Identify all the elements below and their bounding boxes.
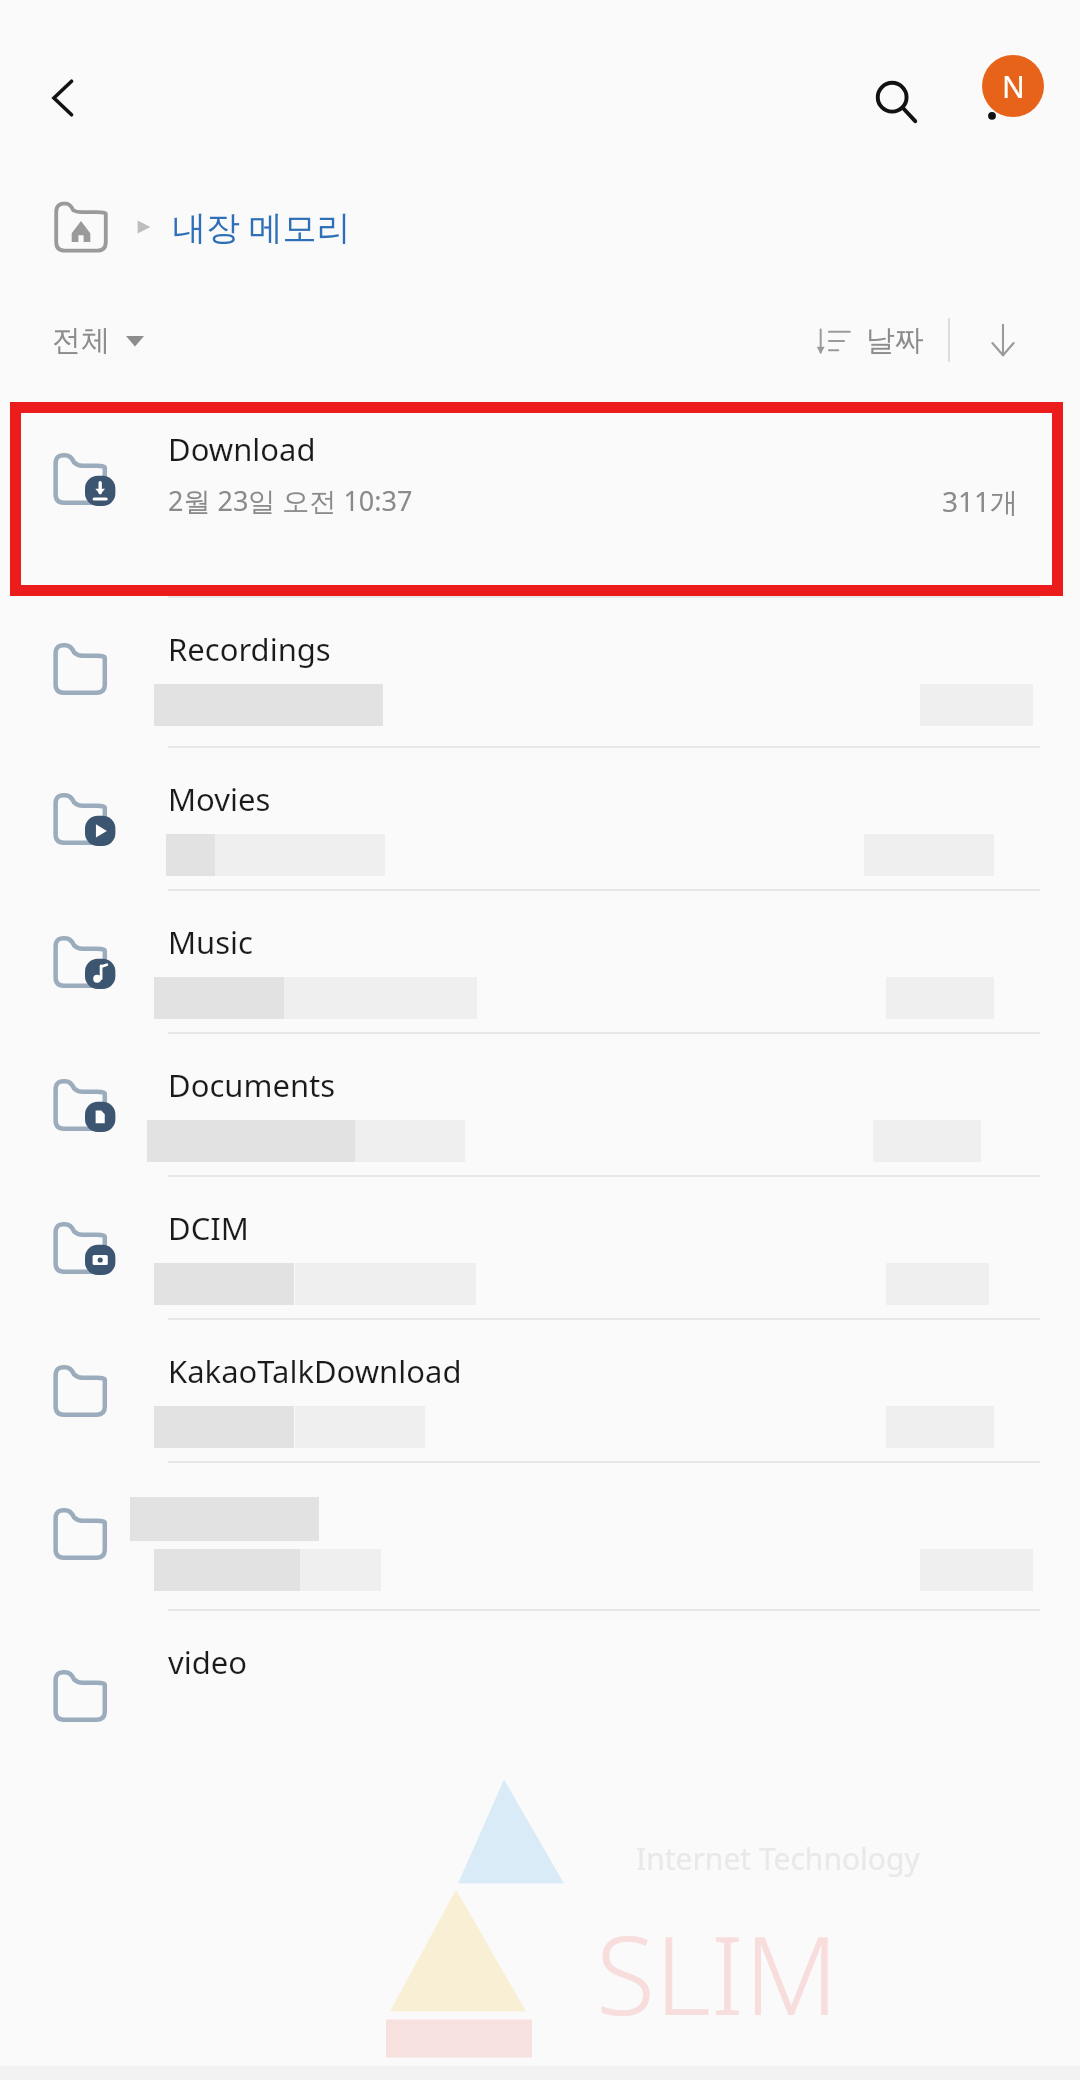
button[interactable]: 전체 xyxy=(52,322,144,359)
staticText: Download xyxy=(168,428,316,470)
button[interactable]: DCIM xyxy=(0,1177,1080,1320)
staticText: Music xyxy=(168,921,254,963)
button[interactable]: video xyxy=(0,1611,1080,1751)
button[interactable]: Download xyxy=(0,398,1080,598)
button[interactable]: More options xyxy=(952,62,1032,142)
button[interactable]: 내장 메모리 xyxy=(172,204,351,250)
staticText: N xyxy=(1002,66,1025,107)
button[interactable]: KakaoTalkDownload xyxy=(0,1320,1080,1463)
button[interactable]: 날짜 xyxy=(816,322,924,359)
staticText: KakaoTalkDownload xyxy=(168,1350,462,1392)
staticText: Movies xyxy=(168,778,271,820)
staticText: Recordings xyxy=(168,628,331,670)
staticText: 내장 메모리 xyxy=(172,204,351,250)
staticText: video xyxy=(168,1641,248,1683)
staticText: Internet Technology xyxy=(636,1838,920,1879)
staticText: DCIM xyxy=(168,1207,249,1249)
button[interactable]: Recordings xyxy=(0,598,1080,748)
staticText: 날짜 xyxy=(866,322,924,359)
button[interactable]: Home storage xyxy=(50,196,112,258)
button[interactable]: Back xyxy=(28,62,100,134)
button[interactable] xyxy=(0,1463,1080,1611)
button[interactable]: Documents xyxy=(0,1034,1080,1177)
button[interactable]: Music xyxy=(0,891,1080,1034)
button[interactable]: Movies xyxy=(0,748,1080,891)
staticText: 2월 23일 오전 10:37 xyxy=(168,482,413,519)
button[interactable]: Sort direction descending xyxy=(972,309,1034,371)
staticText: Documents xyxy=(168,1064,336,1106)
staticText: 311개 xyxy=(0,482,1018,520)
staticText: 전체 xyxy=(52,322,110,359)
staticText: SLIM xyxy=(596,1900,839,2047)
button[interactable]: Search xyxy=(856,62,936,142)
